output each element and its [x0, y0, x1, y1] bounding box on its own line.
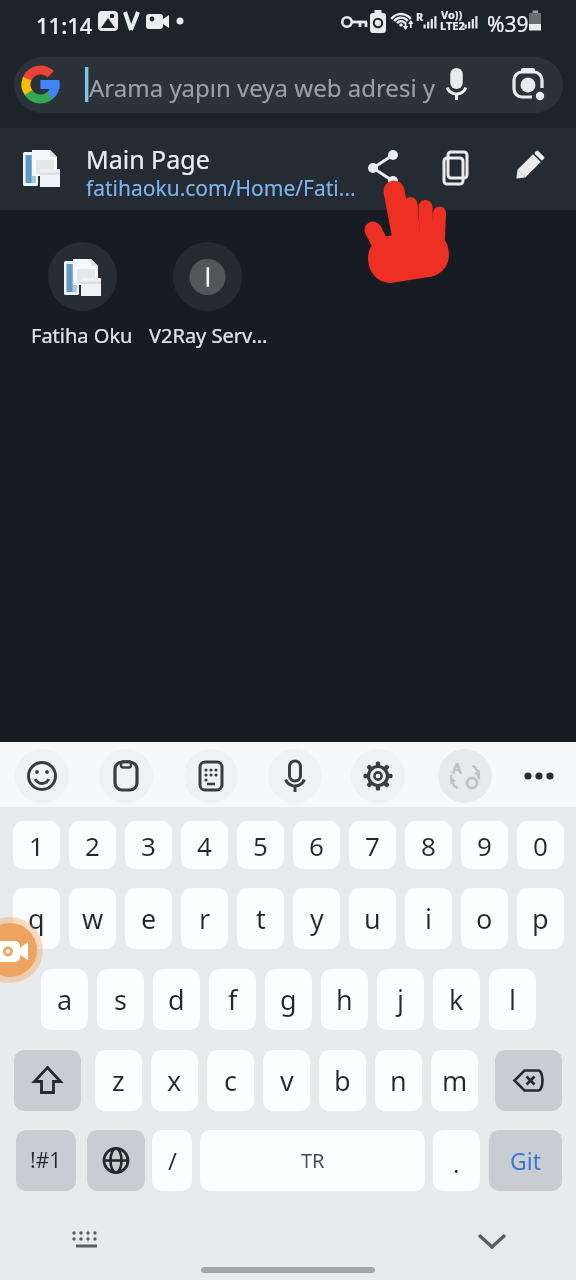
button[interactable]: i	[405, 888, 452, 949]
button[interactable]: a	[41, 969, 88, 1030]
button[interactable]: f	[209, 969, 256, 1030]
button[interactable]: 7	[349, 821, 396, 869]
staticText: 3	[141, 828, 156, 863]
button[interactable]	[468, 1218, 516, 1266]
button[interactable]: 1	[13, 821, 60, 869]
button[interactable]: k	[433, 969, 480, 1030]
button[interactable]: 4	[181, 821, 228, 869]
button[interactable]	[87, 1130, 145, 1191]
staticText: LTE2	[440, 18, 465, 33]
staticText: w	[82, 900, 104, 937]
button[interactable]	[173, 242, 242, 311]
staticText: t	[256, 900, 266, 937]
button[interactable]: t	[237, 888, 284, 949]
button[interactable]	[432, 60, 480, 108]
staticText: g	[280, 981, 297, 1018]
staticText: 7	[365, 828, 380, 863]
staticText: i	[425, 900, 432, 937]
staticText: k	[449, 981, 464, 1018]
staticText: 11:14	[36, 10, 93, 40]
staticText: Git	[510, 1145, 541, 1176]
staticText: x	[167, 1062, 182, 1099]
staticText: d	[168, 981, 185, 1018]
staticText: 6	[309, 828, 324, 863]
staticText: s	[114, 981, 127, 1018]
button[interactable]: h	[321, 969, 368, 1030]
button[interactable]	[503, 144, 551, 192]
button[interactable]: b	[319, 1050, 366, 1111]
button[interactable]	[184, 749, 238, 803]
staticText: u	[364, 900, 381, 937]
staticText: 1	[29, 828, 44, 863]
button[interactable]: v	[263, 1050, 310, 1111]
button[interactable]: c	[207, 1050, 254, 1111]
button[interactable]	[351, 749, 405, 803]
button[interactable]: 9	[461, 821, 508, 869]
button[interactable]: !#1	[16, 1130, 76, 1191]
button[interactable]: 6	[293, 821, 340, 869]
button[interactable]	[268, 749, 322, 803]
button[interactable]	[438, 749, 492, 803]
button[interactable]	[48, 242, 117, 311]
button[interactable]: z	[95, 1050, 142, 1111]
staticText: R	[416, 9, 424, 24]
staticText: p	[532, 900, 549, 937]
button[interactable]: 8	[405, 821, 452, 869]
button[interactable]	[0, 128, 576, 210]
staticText: n	[390, 1062, 407, 1099]
button[interactable]: 5	[237, 821, 284, 869]
button[interactable]: s	[97, 969, 144, 1030]
staticText: o	[476, 900, 493, 937]
button[interactable]: x	[151, 1050, 198, 1111]
button[interactable]: w	[69, 888, 116, 949]
button[interactable]: p	[517, 888, 564, 949]
button[interactable]: g	[265, 969, 312, 1030]
button[interactable]: o	[461, 888, 508, 949]
staticText: Arama yapın veya web adresi y	[89, 71, 436, 104]
button[interactable]	[431, 144, 479, 192]
button[interactable]: n	[375, 1050, 422, 1111]
button[interactable]: m	[431, 1050, 478, 1111]
staticText: m	[442, 1062, 468, 1099]
button[interactable]: j	[377, 969, 424, 1030]
button[interactable]	[433, 1130, 480, 1191]
staticText: /	[168, 1144, 177, 1177]
staticText: .	[453, 1147, 460, 1180]
button[interactable]: 2	[69, 821, 116, 869]
button[interactable]: /	[152, 1130, 192, 1191]
staticText: V2Ray Serv...	[149, 322, 268, 348]
button[interactable]: q	[13, 888, 60, 949]
button[interactable]: y	[293, 888, 340, 949]
button[interactable]: TR	[200, 1130, 425, 1191]
staticText: Main Page	[86, 142, 210, 176]
button[interactable]	[62, 1218, 110, 1266]
staticText: h	[336, 981, 353, 1018]
button[interactable]: d	[153, 969, 200, 1030]
button[interactable]: u	[349, 888, 396, 949]
button[interactable]	[15, 749, 69, 803]
button[interactable]: l	[489, 969, 536, 1030]
staticText: q	[28, 900, 45, 937]
staticText: Vo))	[441, 7, 463, 22]
staticText: 4	[197, 828, 212, 863]
button[interactable]	[99, 749, 153, 803]
button[interactable]	[14, 57, 563, 113]
staticText: a	[57, 981, 73, 1018]
staticText: c	[224, 1062, 237, 1099]
staticText: l	[509, 981, 516, 1018]
button[interactable]: r	[181, 888, 228, 949]
staticText: 8	[421, 828, 436, 863]
button[interactable]	[14, 1050, 81, 1111]
button[interactable]	[361, 144, 409, 192]
button[interactable]	[495, 1050, 562, 1111]
button[interactable]: 3	[125, 821, 172, 869]
staticText: r	[199, 900, 211, 937]
staticText: v	[280, 1062, 294, 1099]
button[interactable]: Git	[489, 1130, 562, 1191]
button[interactable]: 0	[517, 821, 564, 869]
staticText: Fatiha Oku	[31, 322, 133, 348]
button[interactable]	[512, 749, 566, 803]
staticText: e	[141, 900, 157, 937]
button[interactable]	[504, 60, 552, 108]
button[interactable]: e	[125, 888, 172, 949]
